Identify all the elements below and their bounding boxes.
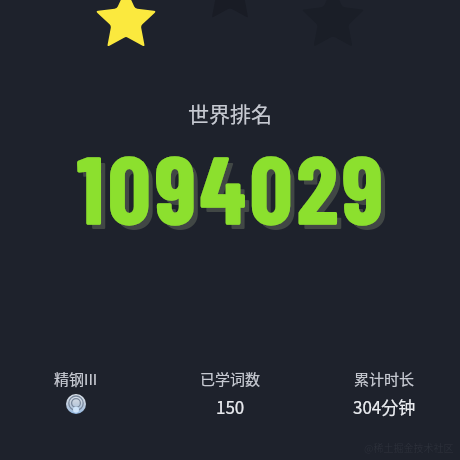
- staticText: 1094029: [82, 135, 393, 248]
- button[interactable]: 累计时长: [353, 368, 416, 419]
- staticText: 精钢III: [54, 368, 98, 390]
- staticText: 1094029: [77, 130, 388, 243]
- staticText: 已学词数: [200, 368, 261, 390]
- other: Rank badge: [66, 394, 86, 414]
- staticText: @稀土掘金技术社区: [364, 440, 454, 454]
- staticText: 1094029: [77, 130, 388, 243]
- button[interactable]: 精钢III: [54, 368, 98, 414]
- staticText: 304分钟: [353, 394, 416, 419]
- button[interactable]: 已学词数: [200, 368, 261, 419]
- button[interactable]: 世界排名: [188, 98, 272, 128]
- staticText: 累计时长: [354, 368, 415, 390]
- button[interactable]: 1094029: [77, 130, 388, 243]
- staticText: 150: [216, 394, 245, 419]
